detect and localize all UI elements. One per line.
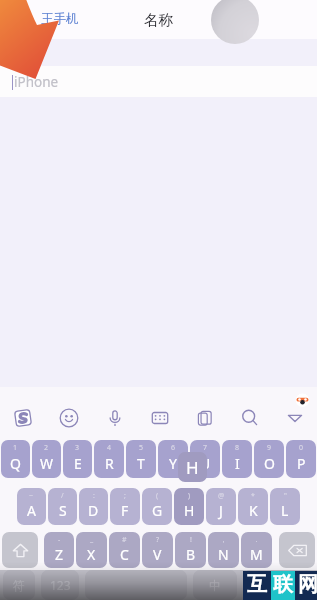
staticText: ) <box>188 491 191 501</box>
staticText: : <box>93 491 95 501</box>
staticText: T <box>137 454 145 473</box>
staticText: 符 <box>13 578 25 593</box>
button[interactable]: 2 <box>32 440 61 478</box>
staticText: D <box>88 501 99 520</box>
staticText: 中 <box>209 578 221 593</box>
staticText: U <box>200 454 211 473</box>
staticText: Q <box>10 454 21 473</box>
staticText: B <box>186 545 196 564</box>
staticText: 6 <box>171 443 176 453</box>
staticText: # <box>122 535 127 545</box>
button[interactable]: 7 <box>190 440 220 478</box>
button[interactable]: _ <box>76 532 107 568</box>
staticText: ~ <box>29 491 34 501</box>
staticText: I <box>235 454 240 473</box>
button[interactable]: ; <box>110 488 140 525</box>
button[interactable]: 1 <box>1 440 30 478</box>
button[interactable]: 5 <box>126 440 156 478</box>
staticText: ( <box>156 491 159 501</box>
staticText: N <box>218 545 229 564</box>
staticText: V <box>153 545 162 564</box>
staticText: 1 <box>13 443 18 453</box>
staticText: H <box>186 456 199 479</box>
button[interactable]: 3 <box>63 440 92 478</box>
staticText: 互 <box>247 572 267 597</box>
staticText: ! <box>190 535 192 545</box>
button[interactable]: / <box>48 488 77 525</box>
button[interactable]: Backspace <box>279 532 315 568</box>
staticText: C <box>120 545 129 564</box>
staticText: 3 <box>75 443 80 453</box>
staticText: Y <box>169 454 177 473</box>
button[interactable]: Sogou <box>0 401 46 435</box>
staticText: K <box>249 501 258 520</box>
staticText: * <box>251 491 255 501</box>
button[interactable]: Search <box>227 401 272 435</box>
staticText: " <box>284 491 287 501</box>
button[interactable]: Clipboard <box>182 401 227 435</box>
staticText: / <box>61 491 64 501</box>
button[interactable]: Handwriting <box>137 401 182 435</box>
staticText: ; <box>124 491 126 501</box>
staticText: X <box>87 545 96 564</box>
staticText: 8 <box>235 443 240 453</box>
staticText: H <box>184 501 195 520</box>
button[interactable]: 9 <box>254 440 284 478</box>
button[interactable]: " <box>270 488 300 525</box>
staticText: P <box>297 454 306 473</box>
button[interactable]: Shift <box>2 532 38 568</box>
staticText: 7 <box>203 443 208 453</box>
staticText: 9 <box>267 443 272 453</box>
button[interactable]: ? <box>142 532 173 568</box>
staticText: ， <box>220 535 227 544</box>
staticText: ． <box>253 535 260 544</box>
button[interactable]: ) <box>174 488 204 525</box>
button[interactable]: ( <box>142 488 172 525</box>
button[interactable]: Space <box>243 570 314 600</box>
button[interactable]: @ <box>206 488 236 525</box>
staticText: E <box>74 454 82 473</box>
button[interactable]: 123 <box>41 570 79 600</box>
staticText: 5 <box>139 443 144 453</box>
button[interactable]: H <box>178 452 207 482</box>
button[interactable]: ! <box>175 532 206 568</box>
button[interactable]: 中 <box>193 570 237 600</box>
button[interactable]: Space <box>85 570 187 600</box>
button[interactable]: : <box>79 488 108 525</box>
staticText: S <box>59 501 67 520</box>
button[interactable]: 4 <box>94 440 124 478</box>
button[interactable]: * <box>238 488 268 525</box>
staticText: R <box>105 454 114 473</box>
button[interactable]: 8 <box>222 440 252 478</box>
staticText: 名称 <box>144 11 173 29</box>
staticText: O <box>264 454 275 473</box>
staticText: M <box>250 545 263 564</box>
staticText: 0 <box>299 443 304 453</box>
button[interactable]: Emoji <box>46 401 92 435</box>
staticText: J <box>219 501 223 520</box>
staticText: 123 <box>50 577 71 593</box>
staticText: L <box>281 501 289 520</box>
staticText: 网 <box>298 572 317 597</box>
staticText: - <box>58 535 61 545</box>
button[interactable]: ， <box>208 532 239 568</box>
staticText: Z <box>55 545 64 564</box>
button[interactable]: Avatar <box>211 0 259 44</box>
button[interactable]: Collapse <box>272 401 317 435</box>
button[interactable]: 6 <box>158 440 188 478</box>
staticText: iPhone <box>14 73 59 91</box>
button[interactable]: # <box>109 532 140 568</box>
button[interactable]: Voice <box>92 401 137 435</box>
staticText: 4 <box>107 443 112 453</box>
button[interactable]: - <box>44 532 74 568</box>
button[interactable]: 0 <box>286 440 316 478</box>
staticText: G <box>152 501 163 520</box>
button[interactable]: 符 <box>3 570 35 600</box>
staticText: _ <box>90 535 94 545</box>
staticText: F <box>121 501 129 520</box>
button[interactable]: 王手机 <box>41 11 79 27</box>
staticText: @ <box>218 491 225 501</box>
staticText: A <box>27 501 36 520</box>
button[interactable]: ． <box>241 532 272 568</box>
button[interactable]: ~ <box>17 488 46 525</box>
